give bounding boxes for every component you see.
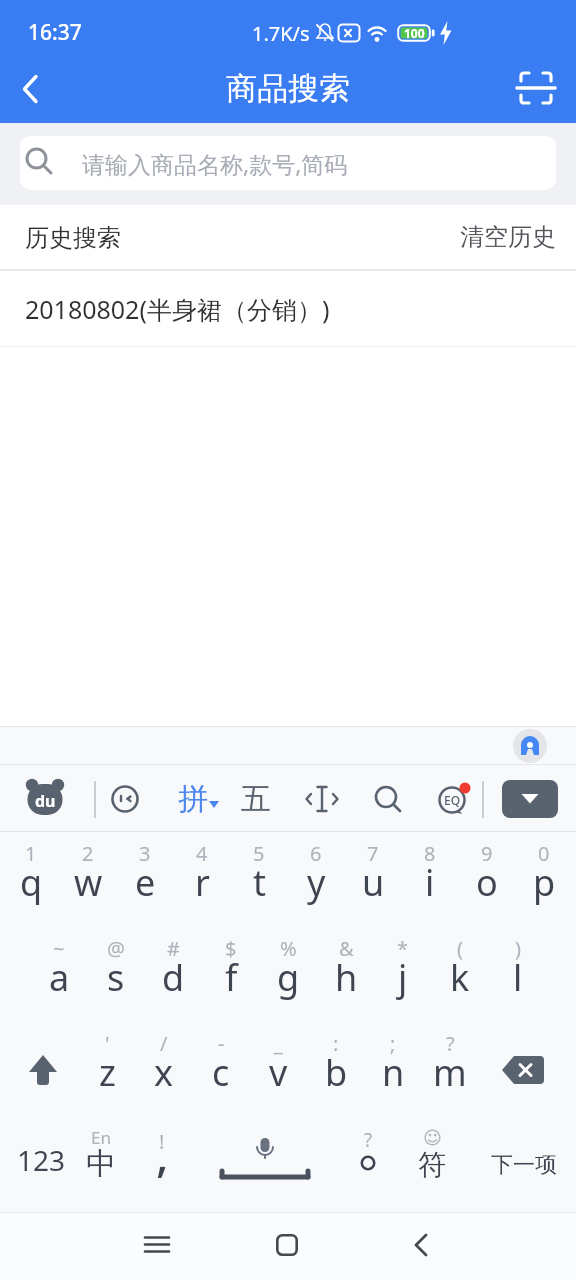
button[interactable]: 3: [117, 832, 173, 927]
staticText: :: [333, 1030, 339, 1057]
button[interactable]: $: [203, 927, 259, 1022]
staticText: 9: [481, 840, 493, 867]
button[interactable]: /: [136, 1022, 192, 1117]
button[interactable]: 2: [60, 832, 116, 927]
button[interactable]: 20180802(半身裙（分销）): [0, 271, 576, 346]
button[interactable]: ': [79, 1022, 135, 1117]
staticText: ?: [446, 1030, 455, 1057]
button[interactable]: (: [432, 927, 488, 1022]
staticText: k: [450, 953, 470, 1002]
staticText: ~: [53, 935, 65, 962]
staticText: ;: [390, 1030, 396, 1057]
button[interactable]: 123: [12, 1130, 70, 1190]
staticText: 历史搜索: [25, 223, 121, 253]
button[interactable]: 1: [3, 832, 59, 927]
staticText: m: [433, 1048, 467, 1097]
staticText: e: [135, 858, 156, 907]
button[interactable]: du: [22, 776, 68, 822]
staticText: 五: [241, 780, 271, 818]
button[interactable]: [362, 777, 414, 821]
staticText: f: [225, 953, 238, 1002]
button[interactable]: [513, 729, 547, 763]
button[interactable]: 7: [345, 832, 401, 927]
button[interactable]: [127, 1222, 187, 1268]
button[interactable]: %: [260, 927, 316, 1022]
staticText: d: [162, 953, 185, 1002]
staticText: g: [277, 953, 300, 1002]
button[interactable]: ;: [365, 1022, 421, 1117]
staticText: *: [397, 935, 409, 962]
button[interactable]: ): [490, 927, 546, 1022]
staticText: b: [325, 1048, 348, 1097]
button[interactable]: [14, 1040, 72, 1100]
staticText: 1.7K/s: [252, 20, 310, 47]
button[interactable]: &: [318, 927, 374, 1022]
button[interactable]: ?: [422, 1022, 478, 1117]
button[interactable]: 拼: [165, 777, 221, 821]
staticText: 4: [196, 840, 208, 867]
staticText: 符: [418, 1147, 446, 1182]
staticText: 商品搜索: [226, 69, 350, 108]
button[interactable]: :: [308, 1022, 364, 1117]
staticText: y: [307, 858, 326, 907]
staticText: @: [107, 935, 125, 962]
staticText: %: [280, 935, 297, 962]
button[interactable]: 0: [516, 832, 572, 927]
button[interactable]: [257, 1222, 317, 1268]
button[interactable]: ~: [31, 927, 87, 1022]
staticText: 拼: [178, 780, 208, 818]
button[interactable]: 请输入商品名称,款号,简码: [20, 136, 556, 190]
button[interactable]: @: [88, 927, 144, 1022]
button[interactable]: #: [145, 927, 201, 1022]
button[interactable]: !: [134, 1117, 190, 1212]
staticText: a: [49, 953, 70, 1002]
button[interactable]: [6, 65, 56, 113]
button[interactable]: *: [375, 927, 431, 1022]
staticText: 2: [82, 840, 94, 867]
button[interactable]: [296, 777, 348, 821]
staticText: i: [425, 858, 435, 907]
button[interactable]: 5: [231, 832, 287, 927]
button[interactable]: [103, 777, 147, 821]
button[interactable]: ?: [340, 1117, 396, 1212]
staticText: 下一项: [491, 1151, 557, 1179]
staticText: q: [20, 858, 43, 907]
staticText: 3: [139, 840, 151, 867]
button[interactable]: 6: [288, 832, 344, 927]
button[interactable]: [502, 780, 558, 818]
button[interactable]: _: [250, 1022, 306, 1117]
staticText: 请输入商品名称,款号,简码: [82, 148, 348, 179]
staticText: r: [195, 858, 210, 907]
staticText: ?: [364, 1127, 373, 1153]
staticText: l: [513, 953, 523, 1002]
staticText: $: [225, 935, 237, 962]
staticText: 16:37: [28, 18, 82, 47]
staticText: s: [107, 953, 125, 1002]
button[interactable]: 下一项: [472, 1117, 576, 1212]
button[interactable]: EQ: [428, 777, 478, 821]
staticText: 20180802(半身裙（分销）): [25, 292, 330, 326]
button[interactable]: ☺: [404, 1117, 460, 1212]
staticText: j: [398, 953, 408, 1002]
button[interactable]: 五: [228, 777, 284, 821]
staticText: t: [253, 858, 266, 907]
button[interactable]: [491, 1040, 555, 1100]
staticText: h: [335, 953, 358, 1002]
staticText: #: [167, 935, 180, 962]
button[interactable]: En: [72, 1117, 130, 1212]
button[interactable]: 8: [402, 832, 458, 927]
button[interactable]: 9: [459, 832, 515, 927]
staticText: x: [154, 1048, 174, 1097]
staticText: du: [35, 790, 56, 812]
staticText: 0: [538, 840, 550, 867]
button[interactable]: [391, 1222, 451, 1268]
button[interactable]: 4: [174, 832, 230, 927]
button[interactable]: [200, 1117, 330, 1212]
button[interactable]: 清空历史: [436, 214, 556, 260]
button[interactable]: -: [193, 1022, 249, 1117]
button[interactable]: [510, 64, 562, 112]
staticText: o: [476, 858, 498, 907]
staticText: 123: [17, 1141, 66, 1179]
staticText: 清空历史: [460, 222, 556, 252]
staticText: 5: [253, 840, 265, 867]
